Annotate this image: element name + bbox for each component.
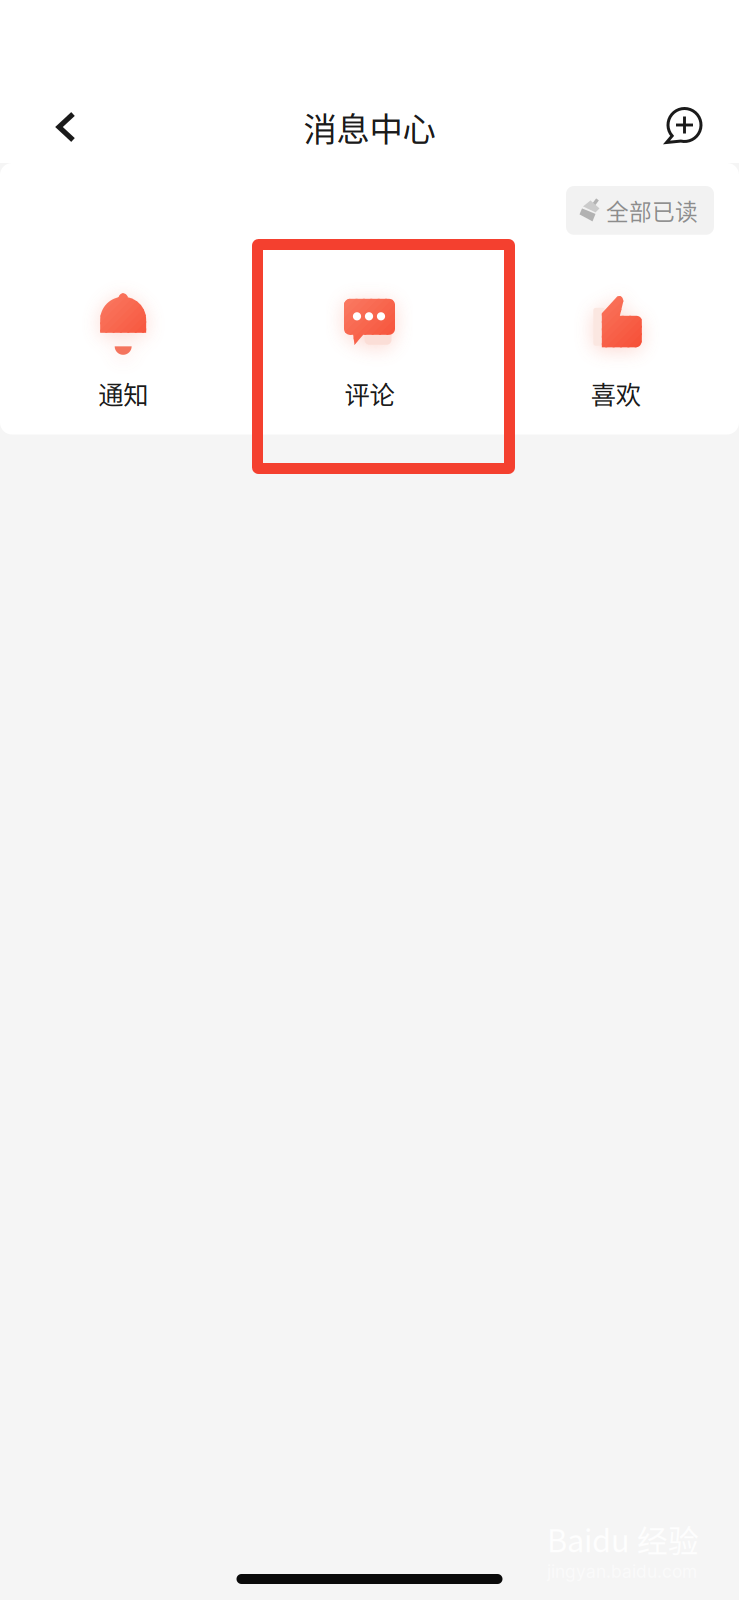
button[interactable]: 喜欢 — [493, 290, 739, 411]
staticText: 通知 — [98, 375, 148, 411]
staticText: 全部已读 — [606, 194, 698, 227]
staticText: 喜欢 — [591, 375, 641, 411]
button[interactable]: 全部已读 — [566, 186, 714, 235]
staticText: 评论 — [344, 375, 394, 411]
button[interactable]: Back — [34, 95, 98, 159]
staticText: 消息中心 — [303, 103, 435, 151]
button[interactable]: 通知 — [0, 290, 246, 411]
button[interactable]: New message — [653, 95, 717, 159]
button[interactable]: 评论 — [246, 290, 493, 411]
